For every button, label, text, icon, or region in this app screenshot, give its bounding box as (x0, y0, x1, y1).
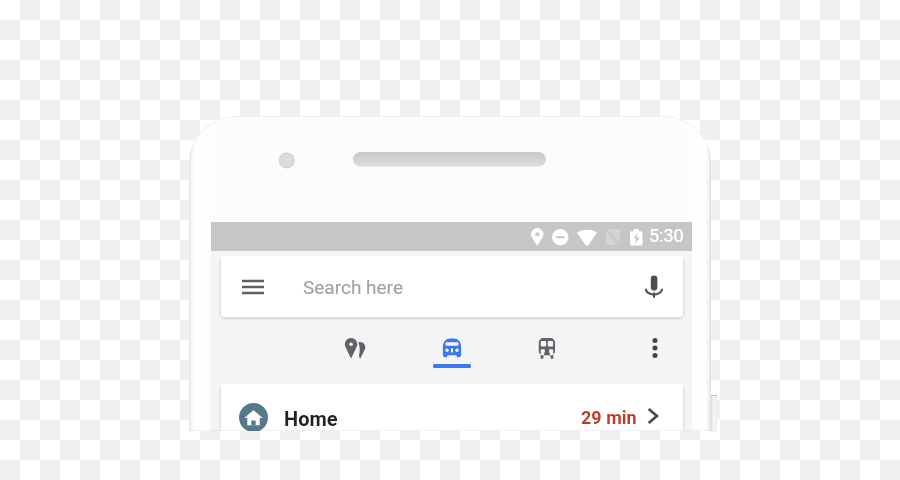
button[interactable]: Driving (425, 322, 479, 370)
button[interactable]: Home (221, 384, 683, 431)
staticText: Home (284, 407, 338, 430)
button[interactable]: Menu (221, 256, 683, 317)
button[interactable]: Menu (237, 269, 267, 299)
button[interactable]: Transit (520, 322, 574, 370)
button[interactable]: Voice search (640, 273, 668, 301)
staticText: 29 min (581, 407, 637, 428)
button[interactable]: Explore (328, 322, 382, 370)
staticText: 5:30 (649, 225, 684, 246)
button[interactable]: More options (628, 322, 682, 370)
staticText: Search here (303, 276, 403, 298)
